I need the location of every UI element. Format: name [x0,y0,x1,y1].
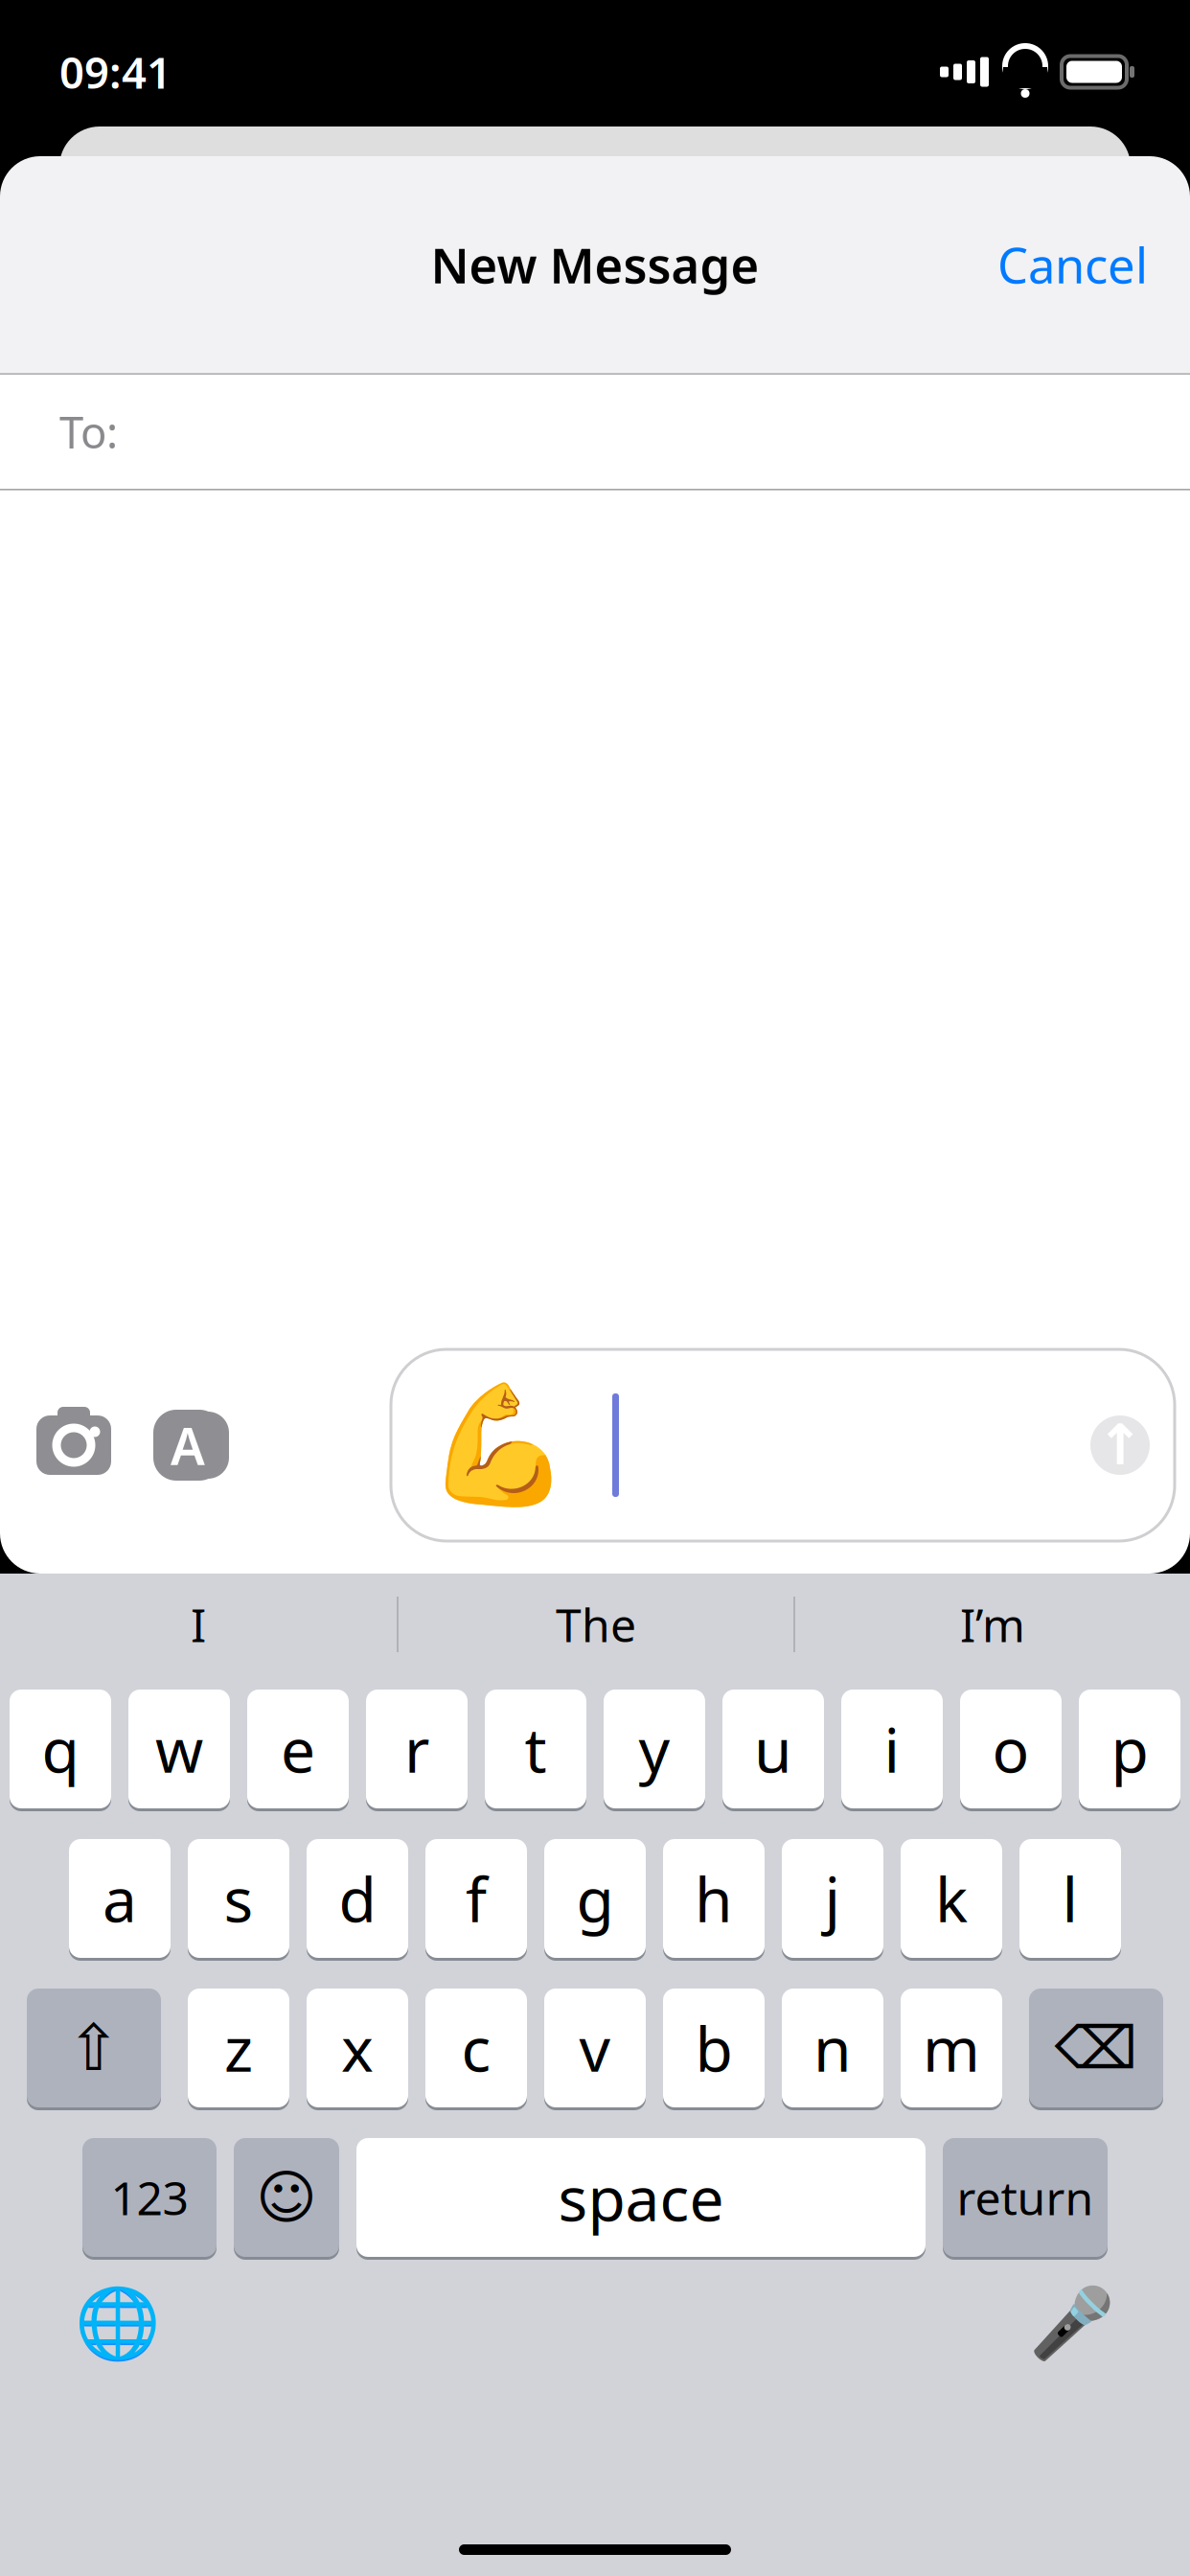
staticText: c [461,2007,491,2089]
button[interactable]: z [188,1986,289,2110]
button[interactable]: k [901,1836,1002,1961]
staticText: l [1062,1858,1078,1939]
staticText: s [224,1858,253,1939]
button[interactable]: Camera [27,1404,121,1486]
button[interactable]: Next keyboard [57,2266,178,2380]
staticText: ☺ [256,2164,317,2231]
button[interactable]: The [399,1581,793,1667]
staticText: 123 [111,2167,188,2228]
staticText: f [466,1858,487,1939]
staticText: x [341,2007,374,2089]
button[interactable]: ⇧ [27,1986,161,2110]
button[interactable]: v [544,1986,646,2110]
staticText: r [404,1708,429,1790]
staticText: I’m [960,1594,1025,1655]
staticText: w [155,1708,203,1790]
staticText: m [923,2007,980,2089]
staticText: y [639,1708,670,1790]
staticText: New Message [431,232,759,297]
staticText: space [558,2157,724,2238]
staticText: n [813,2007,852,2089]
button[interactable]: e [247,1687,349,1811]
button[interactable]: I’m [795,1581,1190,1667]
staticText: v [579,2007,611,2089]
staticText: q [42,1708,79,1790]
button[interactable]: ⌫ [1029,1986,1163,2110]
button[interactable]: To: [0,374,1190,489]
staticText: d [339,1858,376,1939]
button[interactable]: l [1019,1836,1121,1961]
button[interactable]: Cancel [976,219,1169,310]
button[interactable]: a [69,1836,171,1961]
button[interactable]: n [782,1986,883,2110]
button[interactable]: d [307,1836,408,1961]
button[interactable]: 123 [82,2135,217,2260]
staticText: a [103,1858,137,1939]
button[interactable]: b [663,1986,765,2110]
button[interactable]: ☺ [234,2135,339,2260]
staticText: g [576,1858,614,1939]
button[interactable]: q [10,1687,111,1811]
staticText: I [191,1594,206,1655]
button[interactable]: j [782,1836,883,1961]
staticText: ⌫ [1054,2015,1138,2081]
staticText: 09:41 [59,43,172,101]
button[interactable]: Dictation [1012,2266,1133,2380]
staticText: To: [59,403,118,461]
button[interactable]: s [188,1836,289,1961]
staticText: e [281,1708,315,1790]
button[interactable]: I [0,1581,397,1667]
button[interactable]: f [425,1836,527,1961]
staticText: 🌐 [75,2284,161,2362]
staticText: The [556,1594,636,1655]
button[interactable]: Send [1090,1415,1175,1475]
staticText: Cancel [997,232,1148,297]
staticText: j [824,1858,841,1939]
button[interactable]: x [307,1986,408,2110]
staticText: i [884,1708,900,1790]
staticText: b [695,2007,732,2089]
staticText: 🎤 [1029,2284,1115,2362]
button[interactable]: space [356,2135,926,2260]
button[interactable]: p [1079,1687,1180,1811]
staticText: h [695,1858,733,1939]
button[interactable]: r [366,1687,468,1811]
button[interactable]: w [128,1687,230,1811]
staticText: t [525,1708,547,1790]
staticText: z [224,2007,253,2089]
staticText: k [935,1858,968,1939]
staticText: ⇧ [67,2012,121,2084]
staticText: ↑ [1097,1413,1144,1477]
staticText: return [957,2167,1094,2228]
button[interactable]: y [604,1687,705,1811]
staticText: 💪 [425,1378,572,1512]
button[interactable]: Apps [121,1404,234,1486]
button[interactable]: m [901,1986,1002,2110]
button[interactable]: t [485,1687,586,1811]
button[interactable]: i [841,1687,943,1811]
staticText: A [171,1411,205,1479]
staticText: u [754,1708,792,1790]
button[interactable]: g [544,1836,646,1961]
button[interactable]: c [425,1986,527,2110]
button[interactable]: u [722,1687,824,1811]
staticText: p [1111,1708,1148,1790]
staticText: o [992,1708,1030,1790]
button[interactable]: o [960,1687,1062,1811]
button[interactable]: h [663,1836,765,1961]
button[interactable]: return [943,2135,1108,2260]
